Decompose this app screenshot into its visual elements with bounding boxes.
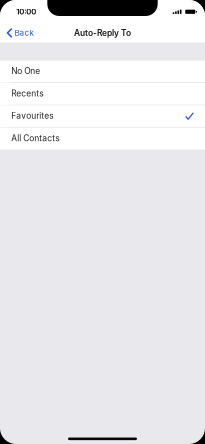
button[interactable]: All Contacts [0,128,205,150]
staticText: No One [11,66,40,76]
staticText: All Contacts [11,133,59,143]
staticText: Auto-Reply To [74,28,131,38]
button[interactable]: No One [0,61,205,82]
staticText: 10:00 [16,7,36,16]
staticText: Back [14,28,33,38]
button[interactable]: Recents [0,83,205,105]
staticText: Recents [11,88,43,98]
button[interactable]: Back [0,22,38,43]
button[interactable]: Favourites [0,105,205,127]
staticText: Favourites [11,111,53,121]
